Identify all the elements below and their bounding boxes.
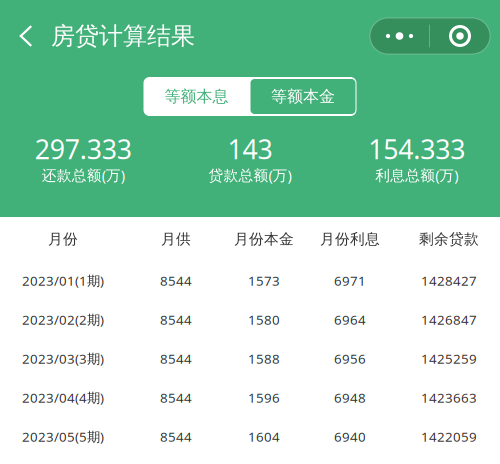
- staticText: 2023/05(5期): [22, 428, 104, 445]
- button[interactable]: 等额本息: [143, 77, 249, 116]
- staticText: 8544: [160, 389, 192, 406]
- staticText: 剩余贷款: [419, 230, 479, 248]
- staticText: 2023/03(3期): [22, 350, 104, 367]
- staticText: 1423663: [421, 389, 477, 406]
- staticText: 297.333: [35, 131, 132, 167]
- staticText: 8544: [160, 272, 192, 289]
- button[interactable]: Back: [10, 14, 42, 58]
- staticText: 1425259: [421, 350, 477, 367]
- staticText: 1588: [248, 350, 280, 367]
- staticText: 2023/02(2期): [22, 311, 104, 328]
- staticText: 6948: [334, 389, 366, 406]
- staticText: 1596: [248, 389, 280, 406]
- staticText: 等额本息: [164, 87, 228, 106]
- staticText: 6940: [334, 428, 366, 445]
- staticText: 8544: [160, 350, 192, 367]
- staticText: 143: [227, 131, 272, 167]
- staticText: 1426847: [421, 311, 477, 328]
- staticText: 1604: [248, 428, 280, 445]
- staticText: 月供: [161, 230, 191, 248]
- staticText: 1573: [248, 272, 280, 289]
- staticText: 2023/01(1期): [22, 272, 104, 289]
- staticText: 利息总额(万): [375, 165, 458, 185]
- staticText: 2023/04(4期): [22, 389, 104, 406]
- staticText: 1422059: [421, 428, 477, 445]
- staticText: 月份本金: [234, 230, 294, 248]
- button[interactable]: More options: [370, 18, 490, 54]
- staticText: 8544: [160, 311, 192, 328]
- staticText: 月份: [48, 230, 78, 248]
- staticText: 月份利息: [320, 230, 380, 248]
- staticText: 1428427: [421, 272, 477, 289]
- staticText: 等额本金: [271, 87, 335, 106]
- staticText: 154.333: [368, 131, 465, 167]
- staticText: 贷款总额(万): [208, 165, 291, 185]
- staticText: 1580: [248, 311, 280, 328]
- staticText: 6956: [334, 350, 366, 367]
- button[interactable]: 等额本金: [249, 77, 356, 116]
- staticText: 房贷计算结果: [51, 21, 195, 51]
- staticText: 6971: [334, 272, 366, 289]
- staticText: 还款总额(万): [42, 165, 125, 185]
- staticText: 6964: [334, 311, 366, 328]
- staticText: 8544: [160, 428, 192, 445]
